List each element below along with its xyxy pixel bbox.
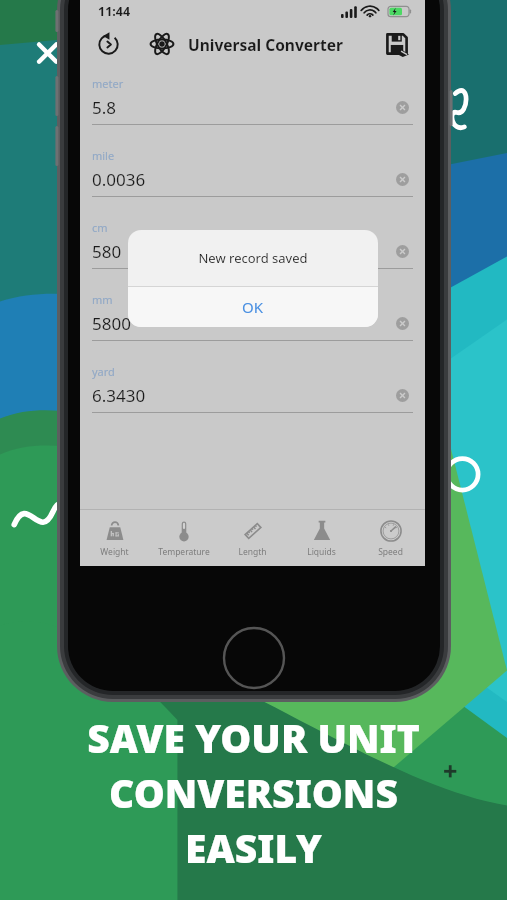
staticText: 5.8	[92, 96, 117, 119]
button[interactable]: Liquids	[287, 510, 356, 566]
staticText: Length	[238, 546, 267, 558]
button[interactable]: Clear	[391, 312, 413, 334]
button[interactable]: History	[88, 24, 128, 64]
button[interactable]: Temperature	[149, 510, 218, 566]
button[interactable]: mm	[92, 292, 413, 364]
staticText: 6.3430	[92, 384, 146, 407]
button[interactable]: Clear	[391, 384, 413, 406]
staticText: 0.0036	[92, 168, 146, 191]
button[interactable]: Clear	[391, 168, 413, 190]
staticText: SAVE YOUR UNIT	[87, 711, 420, 764]
staticText: CONVERSIONS	[109, 766, 398, 819]
button[interactable]: Units	[142, 24, 182, 64]
staticText: 11:44	[98, 3, 131, 20]
staticText: mm	[92, 292, 113, 307]
button[interactable]: Speed	[356, 510, 425, 566]
button[interactable]: yard	[92, 364, 413, 436]
staticText: Speed	[378, 546, 403, 558]
staticText: EASILY	[185, 821, 322, 874]
button[interactable]: cm	[92, 220, 413, 292]
button[interactable]: Weight	[80, 510, 149, 566]
staticText: cm	[92, 220, 108, 235]
staticText: New record saved	[198, 249, 308, 267]
staticText: Temperature	[158, 546, 210, 558]
button[interactable]: Clear	[391, 240, 413, 262]
button[interactable]: OK	[128, 287, 378, 327]
button[interactable]: mile	[92, 148, 413, 220]
staticText: 580	[92, 240, 122, 263]
button[interactable]: Clear	[391, 96, 413, 118]
staticText: Weight	[100, 546, 129, 558]
staticText: 5800	[92, 312, 131, 335]
button[interactable]: meter	[92, 76, 413, 148]
staticText: Universal Converter	[188, 34, 343, 55]
staticText: yard	[92, 364, 115, 379]
staticText: OK	[242, 297, 264, 317]
button[interactable]: Length	[218, 510, 287, 566]
staticText: mile	[92, 148, 115, 163]
button[interactable]: Save	[377, 24, 417, 64]
staticText: Liquids	[307, 546, 336, 558]
staticText: meter	[92, 76, 124, 91]
